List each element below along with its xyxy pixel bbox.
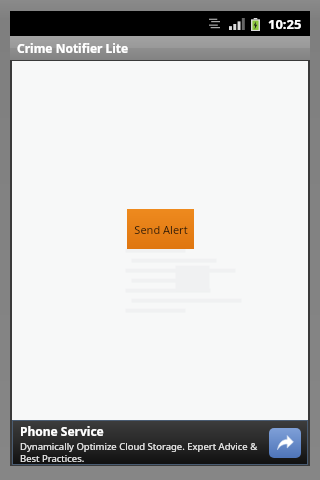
staticText: Send Alert (134, 222, 188, 237)
button[interactable]: Send Alert (127, 209, 194, 249)
button[interactable]: Phone Service (13, 421, 307, 464)
staticText: Phone Service (20, 423, 104, 439)
staticText: 10:25 (268, 15, 302, 33)
staticText: Crime Notifier Lite (17, 40, 129, 56)
button[interactable]: Open advertisement (269, 428, 301, 458)
staticText: Dynamically Optimize Cloud Storage. Expe… (20, 440, 269, 464)
